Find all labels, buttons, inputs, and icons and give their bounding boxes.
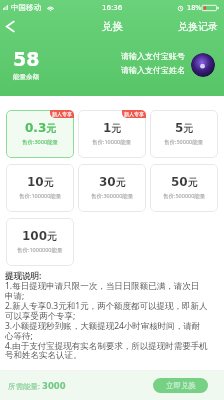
staticText: 4.由于支付宝提现有实名制要求，所以提现时需要手机 [5, 340, 208, 350]
staticText: 2.新人专享0.3元和1元，两个额度都可以提现，即新人 [5, 300, 208, 310]
staticText: 申请; [5, 290, 25, 300]
staticText: 新人专享 [52, 111, 72, 117]
button[interactable]: 立即兑换 [153, 378, 208, 393]
button[interactable]: 0.3元 [6, 110, 74, 158]
staticText: 0.3元 [25, 121, 57, 135]
staticText: 16:36 [102, 4, 123, 12]
staticText: 18% [187, 4, 202, 12]
staticText: 售价:50000能量 [164, 138, 204, 146]
staticText: 中国移动 [11, 3, 41, 12]
button[interactable]: 兑换记录 [170, 15, 224, 37]
button[interactable]: 返回 [0, 15, 20, 37]
button[interactable]: 100元 [6, 218, 74, 266]
staticText: 售价:100000能量 [19, 192, 62, 200]
staticText: 售价:1000000能量 [17, 246, 63, 254]
staticText: 3.小额提现秒到账，大额提现24小时审核时间，请耐 [5, 320, 201, 330]
staticText: 能量余额 [13, 73, 39, 81]
staticText: 可以享受两个专享; [5, 310, 76, 320]
staticText: 100元 [22, 229, 58, 243]
staticText: 新人专享 [124, 111, 144, 117]
staticText: 3000 [42, 381, 66, 391]
staticText: 售价:3000能量 [22, 138, 59, 146]
staticText: 请输入支付宝账号 [121, 51, 185, 61]
staticText: 10元 [27, 175, 54, 189]
staticText: 心等待; [5, 330, 33, 340]
staticText: 兑换 [102, 20, 123, 33]
button[interactable]: 头像 [191, 53, 215, 77]
button[interactable]: 50元 [150, 164, 218, 212]
staticText: 1.每日提现申请只限一次，当日日限额已满，请次日 [5, 280, 200, 290]
staticText: 提现说明: [5, 270, 42, 280]
staticText: 售价:10000能量 [92, 138, 132, 146]
staticText: 所需能量: [8, 381, 42, 391]
staticText: 兑换记录 [178, 20, 218, 33]
staticText: 50元 [171, 175, 198, 189]
staticText: 立即兑换 [166, 381, 196, 390]
staticText: 号和姓名实名认证。 [5, 350, 82, 360]
staticText: 请输入支付宝姓名 [121, 65, 185, 75]
staticText: 30元 [99, 175, 126, 189]
button[interactable]: 5元 [150, 110, 218, 158]
button[interactable]: 30元 [78, 164, 146, 212]
staticText: 1元 [103, 121, 122, 135]
button[interactable]: 10元 [6, 164, 74, 212]
staticText: 58 [13, 48, 40, 70]
staticText: 售价:500000能量 [163, 192, 206, 200]
button[interactable]: 1元 [78, 110, 146, 158]
staticText: 5元 [175, 121, 194, 135]
staticText: 售价:300000能量 [91, 192, 134, 200]
